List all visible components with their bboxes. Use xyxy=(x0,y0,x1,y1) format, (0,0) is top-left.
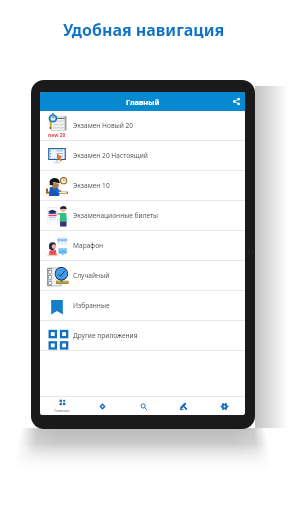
button[interactable]: Экзамен 20 Настоящий xyxy=(40,141,245,170)
button[interactable]: Tools xyxy=(164,397,202,415)
button[interactable]: Другие приложения xyxy=(40,321,245,350)
button[interactable]: Share xyxy=(230,95,243,108)
staticText: Экзамен 20 Настоящий xyxy=(73,151,148,160)
button[interactable]: Марафон xyxy=(40,231,245,260)
button[interactable]: Случайный xyxy=(40,261,245,290)
button[interactable]: Home xyxy=(43,397,81,415)
button[interactable]: Settings xyxy=(205,397,243,415)
button[interactable]: Экзаменационные билеты xyxy=(40,201,245,230)
staticText: new 20 xyxy=(48,132,66,137)
staticText: Избранные xyxy=(73,301,110,310)
staticText: Другие приложения xyxy=(73,331,138,340)
staticText: Марафон xyxy=(73,241,104,250)
button[interactable]: Избранные xyxy=(40,291,245,320)
staticText: Главный xyxy=(54,408,70,413)
button[interactable]: new 20 xyxy=(40,111,245,140)
button[interactable]: Favorites xyxy=(83,397,121,415)
staticText: Случайный xyxy=(73,271,110,280)
button[interactable]: Экзамен 10 xyxy=(40,171,245,200)
staticText: Экзамен 10 xyxy=(73,181,110,190)
staticText: Экзаменационные билеты xyxy=(73,211,159,220)
staticText: Экзамен Новый 20 xyxy=(73,121,134,130)
button[interactable]: Search xyxy=(124,397,162,415)
staticText: Удобная навигация xyxy=(63,19,225,41)
staticText: Главный xyxy=(126,97,160,107)
